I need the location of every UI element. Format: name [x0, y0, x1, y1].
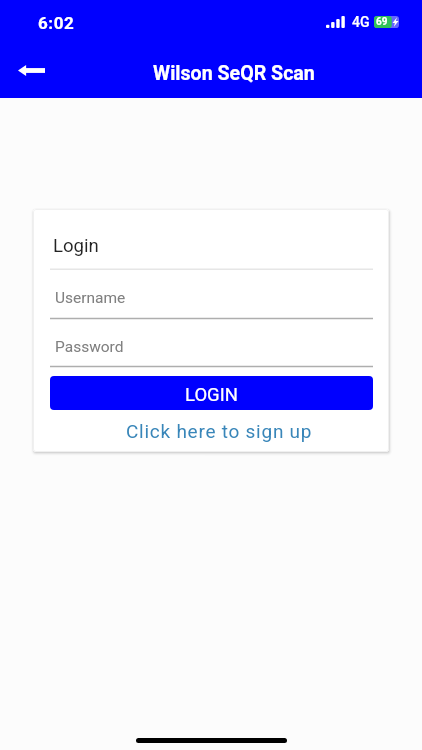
staticText: Wilson SeQR Scan	[153, 62, 315, 85]
button[interactable]: LOGIN	[50, 376, 373, 410]
staticText: Password	[55, 338, 124, 356]
button[interactable]: Back	[5, 48, 58, 92]
staticText: 4G	[352, 14, 370, 30]
staticText: Click here to sign up	[126, 420, 313, 442]
staticText: 69	[376, 16, 388, 28]
button[interactable]: Password	[50, 330, 373, 368]
staticText: Username	[55, 289, 126, 307]
button[interactable]: Username	[50, 281, 373, 320]
staticText: Login	[53, 235, 99, 257]
button[interactable]: Click here to sign up	[41, 414, 389, 448]
staticText: 6:02	[38, 13, 75, 33]
staticText: LOGIN	[185, 384, 238, 406]
